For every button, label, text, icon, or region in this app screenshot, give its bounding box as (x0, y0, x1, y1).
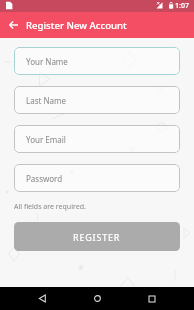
staticText: 1:07 (175, 1, 189, 11)
button[interactable]: Recent apps (140, 287, 163, 310)
button[interactable]: Back (0, 12, 26, 38)
staticText: REGISTER (73, 231, 121, 243)
staticText: Password (26, 173, 63, 184)
staticText: Your Name (26, 56, 68, 67)
button[interactable]: Your Name (14, 47, 180, 75)
button[interactable]: REGISTER (14, 222, 180, 251)
button[interactable]: Back (31, 287, 54, 310)
staticText: Last Name (26, 95, 67, 106)
staticText: Your Email (26, 134, 66, 145)
staticText: Register New Account (26, 19, 127, 32)
button[interactable]: Password (14, 164, 180, 192)
button[interactable]: Home (86, 287, 109, 310)
staticText: All fields are required. (14, 202, 86, 212)
button[interactable]: Last Name (14, 86, 180, 114)
button[interactable]: Your Email (14, 125, 180, 153)
